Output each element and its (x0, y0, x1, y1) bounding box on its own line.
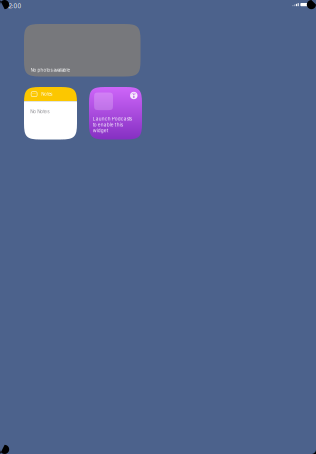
staticText: No Notes (30, 109, 49, 114)
staticText: widget (93, 128, 109, 133)
staticText: Notes (41, 91, 52, 97)
staticText: No photos available (31, 67, 71, 73)
staticText: Launch Podcasts (93, 116, 132, 122)
button[interactable]: Podcasts widget, launch Podcasts to enab… (89, 87, 142, 139)
button[interactable]: Photos widget, no photos available (24, 24, 140, 76)
staticText: to enable this (93, 122, 123, 127)
staticText: 12:00 (7, 3, 22, 9)
button[interactable]: Notes widget, no notes (24, 87, 77, 139)
